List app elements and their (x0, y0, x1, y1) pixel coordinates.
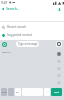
staticText: , (11, 91, 12, 94)
staticText: EN (16, 91, 20, 94)
staticText: Type a message (18, 42, 38, 46)
staticText: RECENT (2, 50, 11, 53)
staticText: Search... (6, 6, 20, 11)
button[interactable]: Back (0, 6, 6, 12)
button[interactable]: ?123 (1, 88, 7, 96)
staticText: Recent search (7, 25, 26, 29)
button[interactable]: EN (15, 88, 21, 96)
button[interactable]: Emoji (2, 42, 7, 47)
button[interactable]: , (8, 88, 14, 96)
staticText: 9:41 (1, 1, 8, 5)
button[interactable]: Recent search (0, 23, 64, 31)
staticText: Suggested contact (7, 33, 33, 37)
button[interactable]: Voice search (56, 6, 62, 12)
button[interactable]: Type a message (16, 41, 39, 47)
staticText: . (47, 91, 48, 94)
staticText: ?123 (2, 91, 7, 94)
staticText: send (54, 91, 60, 94)
button[interactable]: send (51, 88, 62, 96)
button[interactable]: Camera (56, 41, 62, 47)
button[interactable]: . (44, 88, 50, 96)
button[interactable]: Suggested contact (0, 31, 64, 39)
